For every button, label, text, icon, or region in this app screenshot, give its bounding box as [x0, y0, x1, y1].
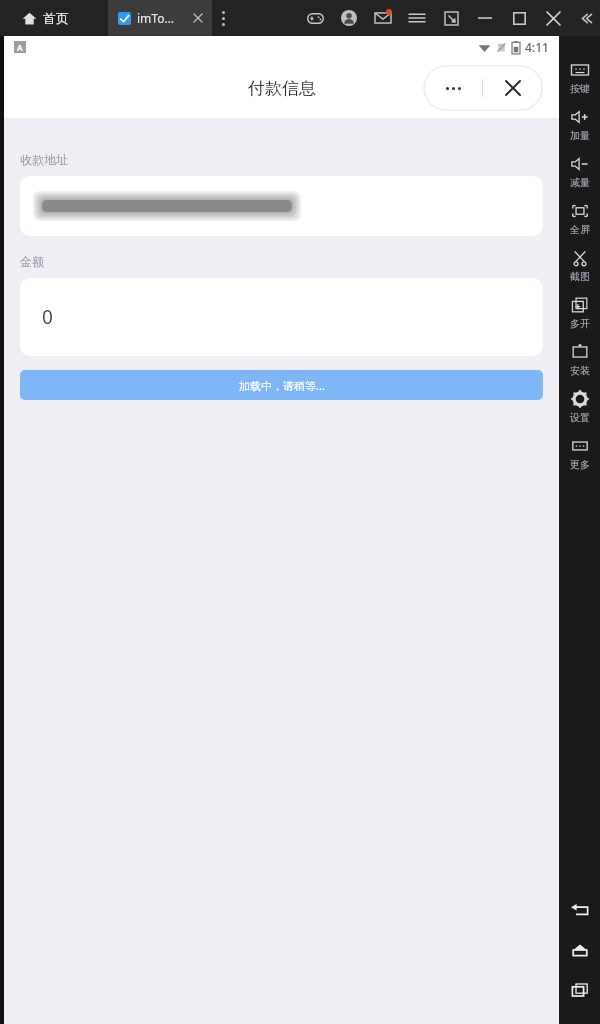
button[interactable] [20, 176, 543, 236]
staticText: 首页 [43, 10, 69, 26]
staticText: 安装 [570, 364, 590, 377]
staticText: 0 [42, 304, 53, 330]
button[interactable]: Volume down [560, 148, 600, 195]
staticText: imTo… [137, 10, 174, 26]
button[interactable]: Maximize [502, 0, 536, 36]
staticText: 付款信息 [248, 78, 316, 99]
button[interactable]: Settings [560, 383, 600, 430]
button[interactable]: 首页 [18, 0, 73, 36]
staticText: 更多 [570, 458, 590, 471]
staticText: 减量 [570, 176, 590, 189]
button[interactable]: More [560, 430, 600, 477]
button[interactable]: Home [560, 930, 600, 970]
button[interactable]: Resize [434, 0, 468, 36]
staticText: 多开 [570, 317, 590, 330]
button[interactable]: 加载中，请稍等... [20, 370, 543, 400]
staticText: 4:11 [525, 39, 549, 55]
staticText: 加量 [570, 129, 590, 142]
staticText: 截图 [570, 270, 590, 283]
staticText: 金额 [20, 254, 44, 269]
button[interactable]: Fullscreen [560, 195, 600, 242]
button[interactable]: Messages [366, 0, 400, 36]
button[interactable]: Back [560, 890, 600, 930]
staticText: 设置 [570, 411, 590, 424]
button[interactable]: Menu [400, 0, 434, 36]
button[interactable]: 0 [20, 278, 543, 356]
staticText: 加载中，请稍等... [239, 378, 325, 393]
staticText: 按键 [570, 82, 590, 95]
button[interactable]: Volume up [560, 101, 600, 148]
button[interactable]: Install APK [560, 336, 600, 383]
button[interactable]: Close window [536, 0, 570, 36]
button[interactable]: Collapse [570, 0, 600, 36]
staticText: 全屏 [570, 223, 590, 236]
button[interactable]: Multi instance [560, 289, 600, 336]
button[interactable]: Minimize [468, 0, 502, 36]
button[interactable]: Keys [560, 54, 600, 101]
button[interactable]: Account [332, 0, 366, 36]
staticText: A [17, 42, 23, 53]
button[interactable]: Screenshot [560, 242, 600, 289]
staticText: 收款地址 [20, 152, 68, 167]
button[interactable]: Recents [560, 970, 600, 1010]
button[interactable]: imTo… [108, 0, 212, 36]
button[interactable]: Tab menu [212, 0, 234, 36]
button[interactable]: Close [483, 66, 542, 110]
button[interactable]: More options [424, 66, 482, 110]
button[interactable]: Game center [298, 0, 332, 36]
button[interactable]: Close tab [190, 10, 206, 26]
